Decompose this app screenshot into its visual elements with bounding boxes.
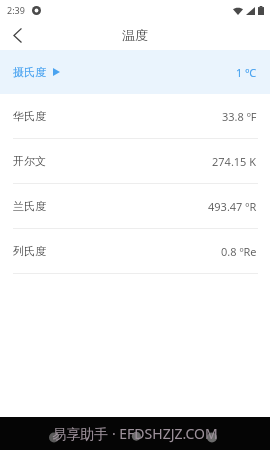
button[interactable]: 列氏度 <box>0 229 270 273</box>
button[interactable]: 兰氏度 <box>0 184 270 228</box>
button[interactable]: 摄氏度 <box>0 50 270 94</box>
button[interactable]: Back <box>0 20 34 50</box>
staticText: 华氏度 <box>13 109 46 123</box>
button[interactable]: 华氏度 <box>0 94 270 138</box>
staticText: 33.8 ºF <box>222 109 257 124</box>
button[interactable]: 开尔文 <box>0 139 270 183</box>
staticText: 493.47 ºR <box>208 199 257 214</box>
staticText: 274.15 K <box>212 154 257 169</box>
staticText: 兰氏度 <box>13 199 46 213</box>
staticText: 易享助手 · EFDSHZJZ.COM <box>0 424 270 443</box>
staticText: 1 ºC <box>236 65 257 80</box>
staticText: 0.8 ºRe <box>221 244 257 259</box>
staticText: 2:39 <box>7 4 25 16</box>
staticText: 温度 <box>122 27 148 43</box>
staticText: 开尔文 <box>13 154 46 168</box>
staticText: 摄氏度 <box>13 65 46 79</box>
staticText: 列氏度 <box>13 244 46 258</box>
